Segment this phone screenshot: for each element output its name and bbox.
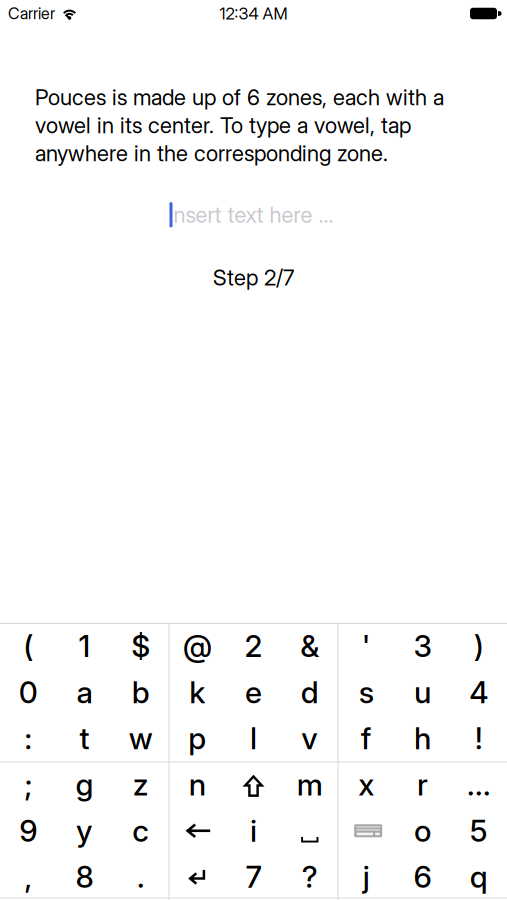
staticText: 8 — [75, 859, 93, 895]
staticText: k — [189, 674, 205, 710]
button[interactable]: y — [56, 808, 113, 854]
staticText: h — [414, 720, 431, 757]
staticText: d — [301, 674, 319, 710]
staticText: l — [250, 720, 257, 757]
staticText: ! — [475, 720, 483, 757]
button[interactable]: ) — [451, 623, 507, 669]
staticText: Carrier — [8, 4, 55, 23]
staticText: p — [188, 720, 206, 757]
button[interactable]: Next keyboard — [338, 808, 394, 854]
button[interactable]: a — [56, 669, 113, 715]
button[interactable]: n — [169, 761, 225, 808]
staticText: Step 2/7 — [213, 264, 294, 291]
staticText: x — [358, 766, 374, 803]
button[interactable]: l — [225, 715, 282, 761]
staticText: 6 — [413, 859, 431, 895]
staticText: @ — [183, 628, 212, 664]
staticText: z — [133, 766, 149, 803]
staticText: i — [250, 813, 257, 849]
staticText: 9 — [19, 813, 37, 849]
staticText: a — [76, 674, 92, 710]
button[interactable]: m — [282, 761, 338, 808]
button[interactable]: u — [394, 669, 451, 715]
staticText: e — [245, 674, 262, 710]
staticText: 5 — [470, 813, 488, 849]
staticText: ( — [23, 628, 33, 664]
button[interactable]: 1 — [56, 623, 113, 669]
button[interactable]: 5 — [451, 808, 507, 854]
button[interactable]: @ — [169, 623, 225, 669]
staticText: j — [363, 859, 370, 895]
button[interactable]: v — [282, 715, 338, 761]
button[interactable]: w — [113, 715, 169, 761]
button[interactable]: Space — [282, 808, 338, 854]
button[interactable]: 4 — [451, 669, 507, 715]
staticText: … — [467, 766, 491, 803]
button[interactable]: 3 — [394, 623, 451, 669]
button[interactable]: Return — [169, 854, 225, 900]
staticText: g — [75, 766, 93, 803]
button[interactable]: p — [169, 715, 225, 761]
button[interactable]: … — [451, 761, 507, 808]
button[interactable]: ; — [0, 761, 56, 808]
button[interactable]: , — [0, 854, 56, 900]
staticText: & — [300, 628, 319, 664]
button[interactable]: Insert text here — [169, 201, 333, 228]
staticText: 0 — [19, 674, 38, 710]
button[interactable]: z — [113, 761, 169, 808]
button[interactable]: Delete — [169, 808, 225, 854]
button[interactable]: 2 — [225, 623, 282, 669]
button[interactable]: e — [225, 669, 282, 715]
button[interactable]: j — [338, 854, 394, 900]
staticText: 2 — [244, 628, 262, 664]
staticText: y — [76, 813, 93, 849]
staticText: 1 — [78, 628, 90, 664]
button[interactable]: k — [169, 669, 225, 715]
staticText: 7 — [245, 859, 261, 895]
staticText: Pouces is made up of 6 zones, each with … — [35, 84, 444, 166]
button[interactable]: & — [282, 623, 338, 669]
button[interactable]: ' — [338, 623, 394, 669]
staticText: b — [132, 674, 150, 710]
staticText: ? — [302, 859, 318, 895]
button[interactable]: ? — [282, 854, 338, 900]
staticText: $ — [131, 628, 150, 664]
button[interactable]: h — [394, 715, 451, 761]
staticText: ) — [474, 628, 484, 664]
button[interactable]: 0 — [0, 669, 56, 715]
staticText: 12:34 AM — [219, 3, 287, 23]
button[interactable]: d — [282, 669, 338, 715]
staticText: w — [129, 720, 153, 757]
staticText: f — [361, 720, 372, 757]
button[interactable]: 9 — [0, 808, 56, 854]
button[interactable]: q — [451, 854, 507, 900]
button[interactable]: o — [394, 808, 451, 854]
button[interactable]: 8 — [56, 854, 113, 900]
button[interactable]: c — [113, 808, 169, 854]
button[interactable]: r — [394, 761, 451, 808]
button[interactable]: f — [338, 715, 394, 761]
button[interactable]: 6 — [394, 854, 451, 900]
button[interactable]: $ — [113, 623, 169, 669]
button[interactable]: x — [338, 761, 394, 808]
button[interactable]: g — [56, 761, 113, 808]
button[interactable]: b — [113, 669, 169, 715]
button[interactable]: i — [225, 808, 282, 854]
button[interactable]: : — [0, 715, 56, 761]
staticText: m — [297, 766, 323, 803]
button[interactable]: Shift — [225, 761, 282, 808]
staticText: 3 — [413, 628, 431, 664]
staticText: ' — [362, 628, 371, 664]
button[interactable]: ( — [0, 623, 56, 669]
button[interactable]: . — [113, 854, 169, 900]
staticText: : — [24, 720, 32, 757]
button[interactable]: t — [56, 715, 113, 761]
button[interactable]: ! — [451, 715, 507, 761]
button[interactable]: s — [338, 669, 394, 715]
button[interactable]: 7 — [225, 854, 282, 900]
staticText: 4 — [469, 674, 488, 710]
staticText: n — [189, 766, 206, 803]
staticText: s — [359, 674, 374, 710]
staticText: v — [301, 720, 318, 757]
staticText: . — [137, 859, 145, 895]
